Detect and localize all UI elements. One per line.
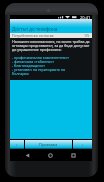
staticText: Наложите изискванията, на които трябва д… [12, 39, 90, 52]
staticText: Достъп до телефона [12, 26, 58, 32]
button[interactable]: Previous [10, 140, 24, 149]
button[interactable]: Back [16, 149, 39, 161]
button[interactable]: Home [39, 149, 62, 161]
staticText: 1/5 [84, 33, 90, 38]
staticText: 20:41 [80, 15, 91, 19]
button[interactable]: Next [73, 140, 92, 149]
staticText: › [82, 142, 84, 147]
staticText: - професионална компетентност - финансов… [12, 55, 69, 76]
staticText: Потребителско съгласие [12, 33, 54, 38]
button[interactable]: Recent apps [62, 149, 85, 161]
staticText: ‹ [16, 142, 18, 147]
button[interactable]: Приемам [25, 140, 72, 149]
staticText: Приемам [39, 142, 58, 147]
